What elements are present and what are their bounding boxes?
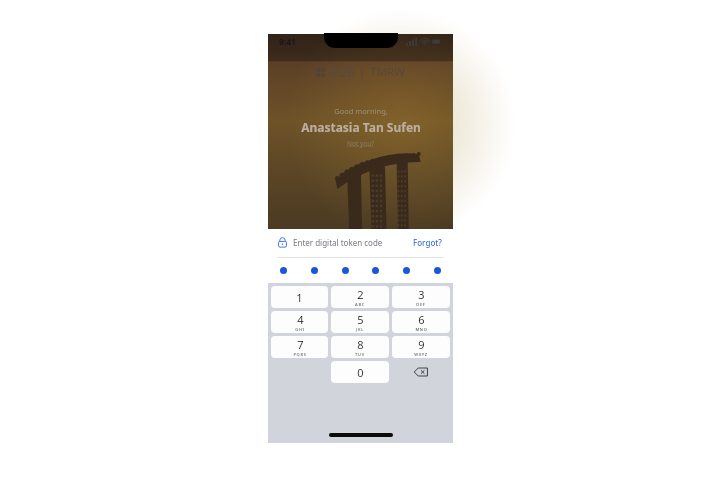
staticText: Anastasia Tan Sufen — [301, 119, 421, 135]
staticText: GHI — [295, 327, 305, 332]
staticText: 0 — [357, 365, 364, 380]
button[interactable]: 3 — [392, 286, 450, 308]
staticText: Good morning, — [334, 106, 388, 116]
staticText: | — [359, 65, 366, 80]
button[interactable]: 1 — [271, 286, 328, 308]
staticText: TUV — [355, 352, 365, 357]
staticText: 1 — [296, 290, 303, 305]
staticText: 5 — [357, 312, 364, 327]
staticText: JKL — [356, 327, 364, 332]
staticText: 8 — [357, 337, 364, 352]
button[interactable]: 9 — [392, 336, 450, 358]
staticText: Not you? — [347, 139, 374, 148]
button[interactable]: 2 — [331, 286, 389, 308]
staticText: MNO — [415, 327, 428, 332]
button[interactable]: 8 — [331, 336, 389, 358]
button[interactable]: Delete — [392, 361, 450, 383]
staticText: Enter digital token code — [293, 237, 383, 248]
staticText: 3 — [418, 287, 425, 302]
button[interactable]: 4 — [271, 311, 328, 333]
button[interactable]: 6 — [392, 311, 450, 333]
button[interactable]: Forgot? — [412, 235, 443, 250]
staticText: UOB — [328, 64, 355, 80]
staticText: 9 — [418, 337, 425, 352]
button[interactable]: 7 — [271, 336, 328, 358]
staticText: 2 — [357, 287, 364, 302]
staticText: WXYZ — [414, 352, 428, 357]
staticText: 9:41 — [279, 36, 296, 48]
staticText: PQRS — [293, 352, 307, 357]
staticText: 7 — [297, 337, 304, 352]
button[interactable]: Not you? — [347, 139, 374, 148]
staticText: 6 — [418, 312, 425, 327]
staticText: DEF — [416, 302, 426, 307]
staticText: ABC — [355, 302, 365, 307]
staticText: TMRW — [370, 64, 405, 80]
button[interactable]: 5 — [331, 311, 389, 333]
staticText: 4 — [297, 312, 304, 327]
staticText: Forgot? — [413, 237, 442, 248]
button[interactable]: Enter digital token code — [278, 235, 383, 250]
button[interactable]: 0 — [331, 361, 389, 383]
